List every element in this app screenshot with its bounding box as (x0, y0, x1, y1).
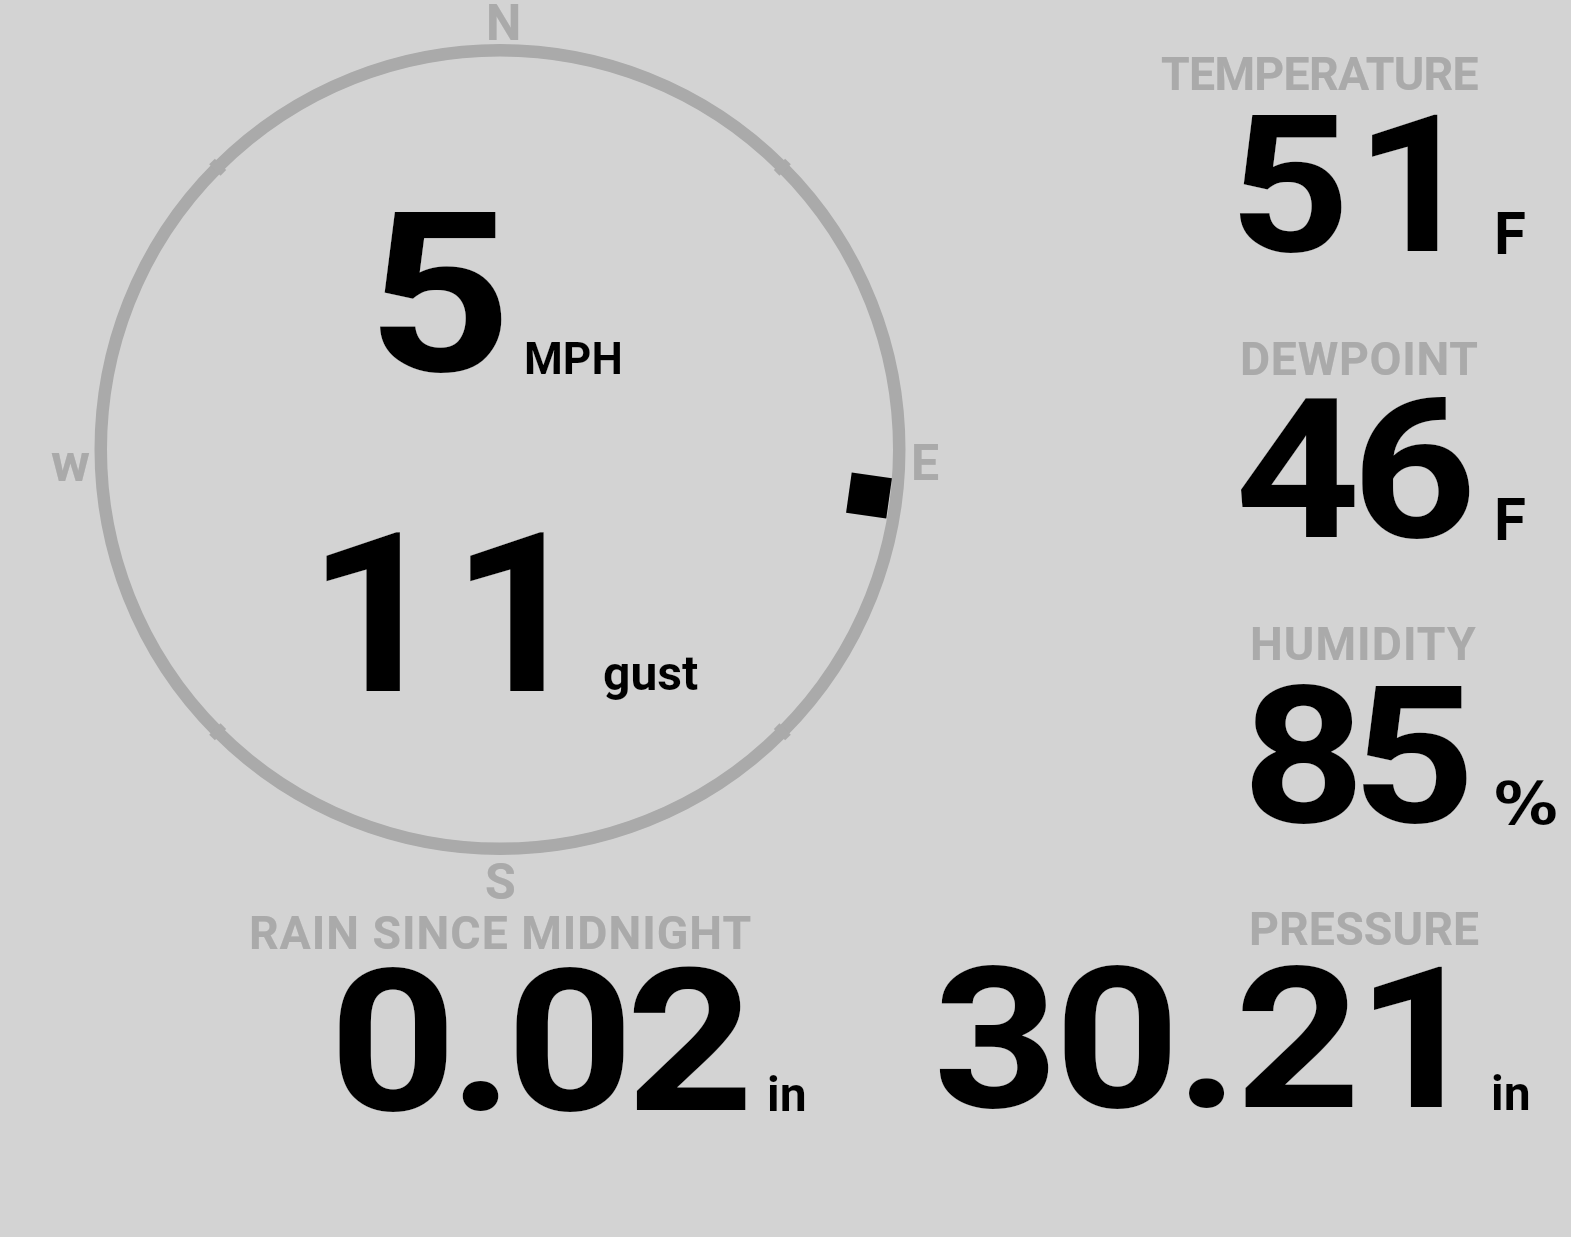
staticText: F (1494, 486, 1527, 554)
staticText: N (486, 0, 522, 53)
staticText: PRESSURE (1249, 902, 1480, 956)
staticText: 0.02 (329, 925, 747, 1150)
button[interactable]: Humidity 85 percent (1140, 610, 1570, 845)
staticText: w (51, 432, 90, 494)
staticText: 51 (1229, 73, 1481, 298)
staticText: DEWPOINT (1240, 332, 1479, 386)
staticText: 30.21 (933, 925, 1477, 1150)
staticText: 46 (1235, 356, 1469, 585)
staticText: HUMIDITY (1250, 617, 1477, 671)
button[interactable]: Rain since midnight 0.02 inches (235, 900, 835, 1125)
staticText: 11 (307, 485, 595, 745)
staticText: in (767, 1066, 807, 1122)
staticText: 85 (1242, 644, 1463, 869)
button[interactable]: Dew point 46 degrees Fahrenheit (1140, 325, 1570, 560)
staticText: TEMPERATURE (1161, 47, 1478, 101)
button[interactable]: Pressure 30.21 inches of mercury (905, 900, 1565, 1125)
staticText: in (1491, 1065, 1531, 1121)
staticText: S (485, 853, 516, 912)
staticText: gust (603, 645, 699, 701)
staticText: % (1494, 769, 1558, 838)
staticText: MPH (524, 333, 623, 385)
staticText: F (1494, 200, 1527, 268)
button[interactable]: Temperature 51 degrees Fahrenheit (1140, 40, 1570, 275)
staticText: RAIN SINCE MIDNIGHT (249, 906, 753, 960)
staticText: E (911, 434, 940, 493)
button[interactable]: Wind 5 miles per hour, gusting to 11 (95, 45, 905, 850)
staticText: 5 (367, 165, 512, 425)
